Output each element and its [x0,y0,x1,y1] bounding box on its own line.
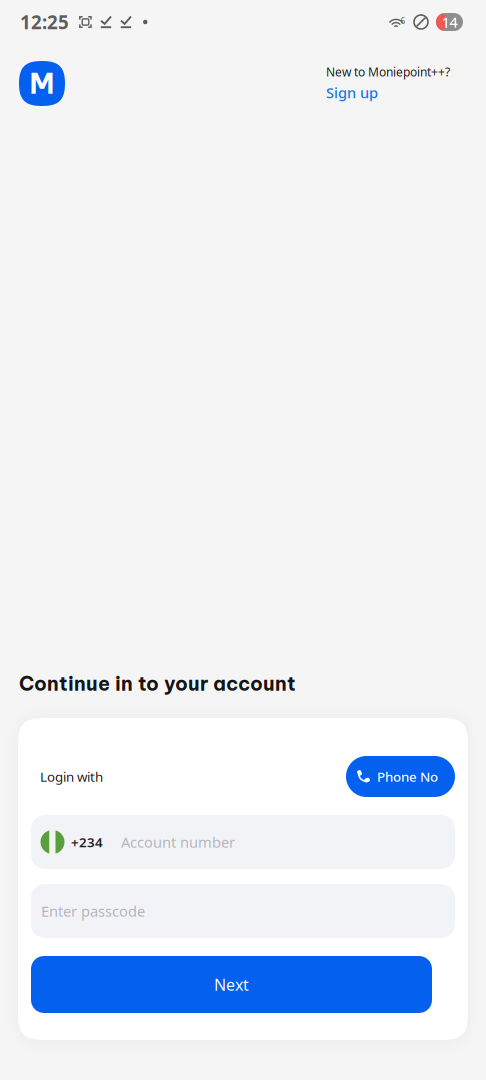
button[interactable]: Next [31,956,432,1013]
staticText: New to Moniepoint++? [326,64,450,80]
staticText: Next [214,974,249,995]
staticText: M [29,66,54,101]
button[interactable]: Phone No [346,756,455,797]
staticText: 14 [441,12,457,32]
staticText: Enter passcode [41,901,145,921]
staticText: +234 [71,833,103,851]
staticText: Login with [40,768,103,785]
staticText: 12:25 [20,10,69,34]
staticText: Account number [121,832,235,852]
staticText: Sign up [326,83,378,102]
staticText: 6 [400,15,405,26]
staticText: Continue in to your account [19,671,296,696]
button[interactable]: Sign up [326,83,378,102]
staticText: Phone No [377,768,438,785]
